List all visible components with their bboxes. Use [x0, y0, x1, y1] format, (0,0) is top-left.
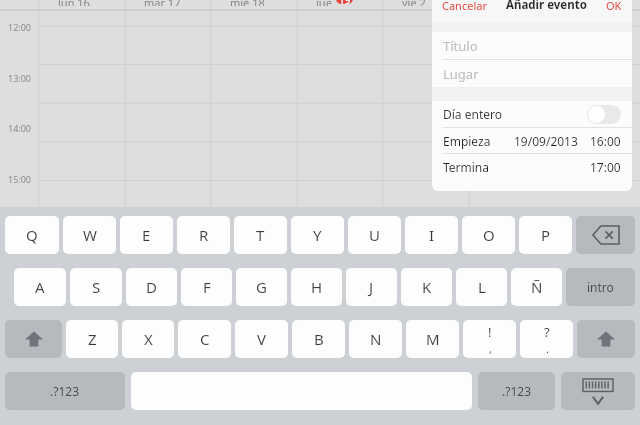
- staticText: R: [199, 225, 209, 245]
- staticText: F: [203, 277, 211, 297]
- staticText: mié 18: [230, 0, 265, 6]
- staticText: 16:00: [590, 133, 621, 149]
- button[interactable]: U: [348, 216, 401, 254]
- button[interactable]: Cancelar: [442, 0, 487, 13]
- staticText: Termina: [443, 159, 490, 175]
- button[interactable]: .?123: [478, 372, 555, 410]
- button[interactable]: Shift: [5, 320, 62, 358]
- staticText: 14:00: [8, 122, 32, 134]
- button[interactable]: J: [346, 268, 397, 306]
- button[interactable]: Lugar: [432, 60, 632, 87]
- staticText: N: [370, 329, 382, 349]
- button[interactable]: S: [70, 268, 122, 306]
- staticText: .?123: [502, 383, 532, 399]
- staticText: Q: [26, 225, 38, 245]
- staticText: jue: [316, 0, 332, 6]
- button[interactable]: W: [63, 216, 116, 254]
- button[interactable]: Backspace: [576, 216, 635, 254]
- staticText: M: [426, 329, 440, 349]
- staticText: lun 16: [58, 0, 90, 6]
- staticText: I: [429, 225, 435, 245]
- button[interactable]: OK: [606, 0, 622, 13]
- button[interactable]: B: [292, 320, 345, 358]
- staticText: 12:00: [8, 21, 32, 33]
- button[interactable]: intro: [566, 268, 635, 306]
- button[interactable]: R: [177, 216, 230, 254]
- button[interactable]: G: [236, 268, 287, 306]
- button[interactable]: K: [401, 268, 452, 306]
- staticText: U: [369, 225, 380, 245]
- staticText: Z: [88, 329, 97, 349]
- staticText: W: [83, 225, 97, 245]
- staticText: O: [483, 225, 495, 245]
- staticText: 19/09/2013: [514, 133, 578, 149]
- staticText: Y: [313, 225, 322, 245]
- staticText: ?: [544, 323, 550, 341]
- staticText: X: [144, 329, 153, 349]
- button[interactable]: Día entero: [432, 101, 632, 127]
- button[interactable]: ?: [520, 320, 573, 358]
- button[interactable]: M: [406, 320, 459, 358]
- staticText: B: [314, 329, 324, 349]
- staticText: J: [369, 277, 374, 297]
- staticText: A: [35, 277, 45, 297]
- staticText: C: [200, 329, 210, 349]
- staticText: P: [541, 225, 551, 245]
- button[interactable]: Shift: [577, 320, 635, 358]
- button[interactable]: Y: [291, 216, 344, 254]
- staticText: 19: [339, 0, 351, 4]
- staticText: Título: [443, 37, 478, 55]
- button[interactable]: X: [122, 320, 174, 358]
- button[interactable]: Título: [432, 32, 632, 59]
- staticText: H: [311, 277, 323, 297]
- staticText: D: [146, 277, 157, 297]
- staticText: .?123: [50, 383, 80, 399]
- button[interactable]: L: [456, 268, 507, 306]
- button[interactable]: Z: [66, 320, 118, 358]
- button[interactable]: Hide keyboard: [561, 372, 635, 410]
- staticText: intro: [587, 279, 614, 295]
- button[interactable]: F: [181, 268, 232, 306]
- staticText: Añadir evento: [506, 0, 587, 13]
- staticText: 17:00: [590, 159, 621, 175]
- button[interactable]: H: [291, 268, 342, 306]
- staticText: .: [546, 341, 549, 356]
- staticText: Empieza: [443, 133, 491, 149]
- staticText: E: [142, 225, 151, 245]
- staticText: Lugar: [443, 65, 479, 83]
- button[interactable]: Q: [5, 216, 59, 254]
- staticText: 16:00: [8, 223, 32, 235]
- button[interactable]: A: [14, 268, 66, 306]
- button[interactable]: C: [178, 320, 231, 358]
- button[interactable]: D: [126, 268, 177, 306]
- button[interactable]: O: [462, 216, 515, 254]
- button[interactable]: Termina: [432, 154, 632, 179]
- staticText: T: [256, 225, 265, 245]
- button[interactable]: E: [120, 216, 173, 254]
- staticText: L: [478, 277, 486, 297]
- staticText: V: [257, 329, 267, 349]
- staticText: Día entero: [443, 106, 502, 122]
- button[interactable]: Ñ: [511, 268, 562, 306]
- button[interactable]: Empieza: [432, 128, 632, 153]
- button[interactable]: V: [235, 320, 288, 358]
- button[interactable]: I: [405, 216, 458, 254]
- button[interactable]: !: [463, 320, 516, 358]
- staticText: G: [256, 277, 267, 297]
- button[interactable]: .?123: [5, 372, 125, 410]
- staticText: 15:00: [8, 173, 32, 185]
- staticText: OK: [606, 0, 622, 13]
- button[interactable]: T: [234, 216, 287, 254]
- staticText: mar 17: [144, 0, 181, 6]
- staticText: !: [488, 323, 492, 341]
- staticText: ,: [489, 341, 492, 356]
- staticText: vie 2: [402, 0, 426, 6]
- staticText: S: [92, 277, 101, 297]
- button[interactable]: P: [519, 216, 572, 254]
- button[interactable]: N: [349, 320, 402, 358]
- staticText: 13:00: [8, 72, 32, 84]
- staticText: Ñ: [531, 277, 543, 297]
- staticText: K: [422, 277, 432, 297]
- staticText: Cancelar: [442, 0, 487, 13]
